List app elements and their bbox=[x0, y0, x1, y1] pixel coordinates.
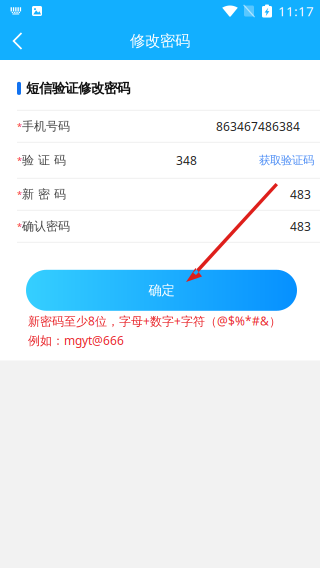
staticText: * bbox=[17, 154, 22, 167]
staticText: 确定 bbox=[148, 282, 174, 299]
staticText: * bbox=[17, 188, 22, 201]
staticText: 新 密 码 bbox=[22, 187, 66, 202]
staticText: 短信验证修改密码 bbox=[26, 80, 130, 97]
staticText: * bbox=[17, 120, 22, 133]
staticText: 例如：mgyt@666 bbox=[28, 332, 124, 348]
button[interactable]: 确定 bbox=[26, 270, 297, 311]
button[interactable]: 获取验证码 bbox=[259, 153, 314, 167]
staticText: 手机号码 bbox=[22, 119, 70, 134]
staticText: * bbox=[17, 220, 22, 233]
staticText: 获取验证码 bbox=[259, 153, 314, 167]
button[interactable]: 返回 bbox=[0, 22, 36, 60]
staticText: 863467486384 bbox=[216, 118, 300, 134]
staticText: 483 bbox=[290, 218, 311, 234]
staticText: 修改密码 bbox=[130, 31, 190, 51]
staticText: 348 bbox=[176, 152, 197, 168]
staticText: 新密码至少8位，字母+数字+字符（@$%*#&） bbox=[28, 313, 281, 329]
staticText: 验 证 码 bbox=[22, 153, 66, 168]
staticText: 11:17 bbox=[278, 2, 314, 20]
staticText: 确认密码 bbox=[22, 219, 70, 234]
staticText: 483 bbox=[290, 186, 311, 202]
